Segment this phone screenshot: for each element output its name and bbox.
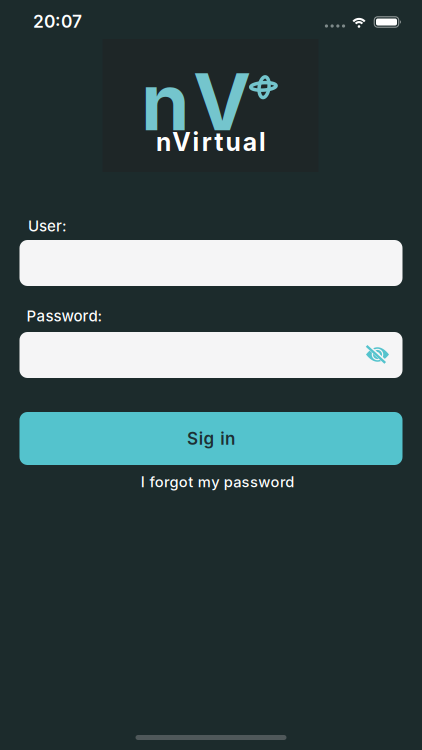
- staticText: nV: [141, 55, 251, 149]
- staticText: I forgot my password: [141, 473, 294, 491]
- button[interactable]: I forgot my password: [141, 473, 294, 491]
- staticText: nVirtual: [156, 127, 266, 157]
- button[interactable]: Show password: [366, 345, 402, 364]
- button[interactable]: Password: [19, 332, 402, 378]
- staticText: 20:07: [33, 11, 82, 32]
- button[interactable]: User: [19, 240, 402, 286]
- staticText: User:: [28, 217, 67, 235]
- staticText: Password:: [26, 307, 102, 325]
- button[interactable]: Sig in: [19, 412, 402, 465]
- staticText: Sig in: [187, 428, 235, 449]
